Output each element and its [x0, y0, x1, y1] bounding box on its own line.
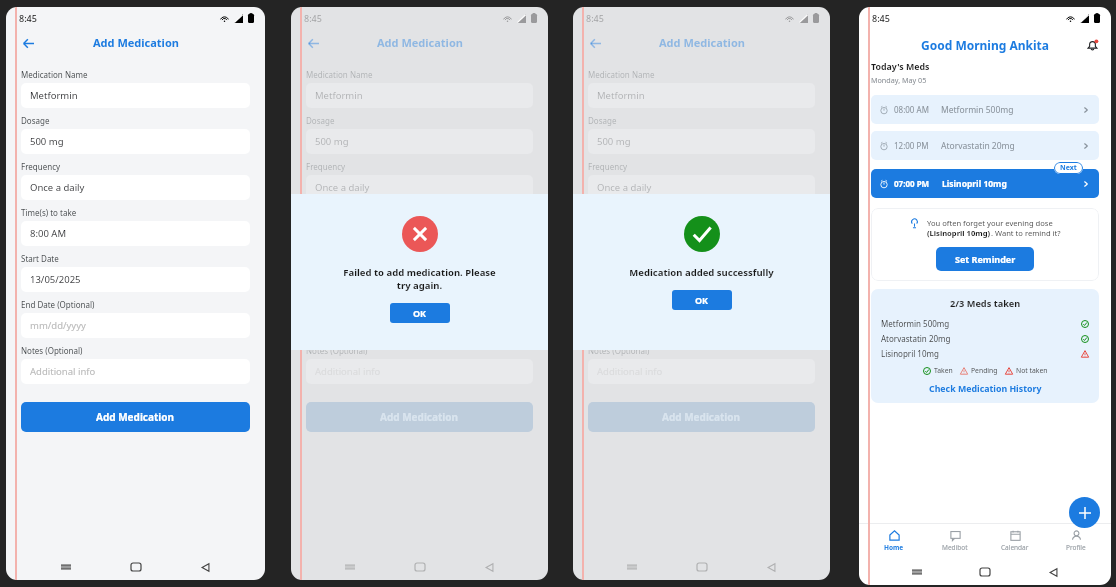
button[interactable]: Recents [340, 557, 360, 577]
staticText: Once a daily [597, 181, 652, 194]
staticText: Additional info [315, 365, 381, 378]
button[interactable]: Home [975, 562, 995, 582]
button[interactable]: Once a daily [588, 175, 815, 200]
staticText: (Lisinopril 10mg) [927, 228, 991, 238]
staticText: Frequency [21, 161, 61, 172]
button[interactable]: 500 mg [306, 129, 533, 154]
staticText: Add Medication [659, 35, 745, 50]
button[interactable]: Add Medication [588, 402, 815, 432]
staticText: Home [884, 543, 904, 552]
staticText: 08:00 AM [894, 104, 929, 115]
staticText: You often forget your evening dose [927, 218, 1053, 228]
staticText: Metformin 500mg [881, 318, 950, 329]
button[interactable]: Medibot [929, 524, 981, 558]
button[interactable]: Back [586, 34, 604, 52]
button[interactable]: Metformin [588, 83, 815, 108]
staticText: 13/05/2025 [315, 273, 366, 286]
button[interactable]: Add medication [1069, 497, 1100, 528]
button[interactable]: mm/dd/yyyy [306, 313, 533, 338]
staticText: Metformin 500mg [941, 104, 1014, 116]
button[interactable]: 08:00 AM [871, 95, 1099, 124]
button[interactable]: Home [692, 557, 712, 577]
button[interactable]: Back [195, 557, 215, 577]
staticText: Medibot [942, 543, 968, 552]
staticText: Once a daily [315, 181, 370, 194]
button[interactable]: 8:00 AM [21, 221, 250, 246]
button[interactable]: 500 mg [588, 129, 815, 154]
button[interactable]: Add Medication [306, 402, 533, 432]
staticText: Start Date [21, 253, 59, 264]
staticText: OK [695, 294, 709, 306]
staticText: 8:45 [19, 12, 37, 24]
staticText: OK [413, 307, 427, 319]
button[interactable]: Metformin [306, 83, 533, 108]
staticText: Once a daily [30, 181, 85, 194]
button[interactable]: Back [304, 34, 322, 52]
button[interactable]: Recents [907, 562, 927, 582]
button[interactable]: Profile [1050, 524, 1102, 558]
staticText: 500 mg [30, 135, 64, 148]
staticText: mm/dd/yyyy [30, 319, 86, 332]
button[interactable]: 07:00 PM [871, 169, 1099, 198]
button[interactable]: Back [479, 557, 499, 577]
button[interactable]: Recents [622, 557, 642, 577]
button[interactable]: OK [672, 290, 732, 310]
staticText: Monday, May 05 [871, 75, 927, 85]
staticText: Medication Name [21, 69, 88, 80]
button[interactable]: 500 mg [21, 129, 250, 154]
staticText: Medication added successfully [593, 266, 810, 279]
button[interactable]: Home [126, 557, 146, 577]
staticText: Metformin [597, 89, 645, 102]
button[interactable]: 12:00 PM [871, 131, 1099, 160]
button[interactable]: Home [868, 524, 920, 558]
button[interactable]: Notifications [1082, 35, 1102, 55]
staticText: Additional info [30, 365, 96, 378]
staticText: 13/05/2025 [597, 273, 648, 286]
button[interactable]: Home [410, 557, 430, 577]
button[interactable]: 13/05/2025 [588, 267, 815, 292]
staticText: 500 mg [315, 135, 349, 148]
staticText: . Want to remind it? [991, 228, 1061, 238]
staticText: Add Medication [662, 410, 741, 424]
button[interactable]: OK [390, 303, 450, 323]
button[interactable]: 8:00 AM [588, 221, 815, 246]
button[interactable]: Back [1043, 562, 1063, 582]
button[interactable]: Back [761, 557, 781, 577]
staticText: 8:45 [872, 12, 890, 24]
button[interactable]: Once a daily [306, 175, 533, 200]
button[interactable]: Add Medication [21, 402, 250, 432]
button[interactable]: Recents [56, 557, 76, 577]
staticText: Frequency [588, 161, 628, 172]
button[interactable]: Check Medication History [929, 383, 1042, 395]
staticText: Dosage [21, 115, 50, 126]
staticText: Notes (Optional) [588, 345, 650, 356]
button[interactable]: Calendar [989, 524, 1041, 558]
staticText: Calendar [1001, 543, 1029, 552]
button[interactable]: 8:00 AM [306, 221, 533, 246]
staticText: Profile [1066, 543, 1086, 552]
staticText: 07:00 PM [894, 178, 930, 189]
button[interactable]: Back [19, 34, 37, 52]
button[interactable]: mm/dd/yyyy [21, 313, 250, 338]
button[interactable]: Once a daily [21, 175, 250, 200]
staticText: Frequency [306, 161, 346, 172]
staticText: Additional info [597, 365, 663, 378]
button[interactable]: Additional info [21, 359, 250, 384]
staticText: 8:45 [586, 12, 604, 24]
button[interactable]: 13/05/2025 [306, 267, 533, 292]
staticText: Metformin [30, 89, 78, 102]
staticText: 2/3 Meds taken [950, 297, 1021, 310]
staticText: Atorvastatin 20mg [881, 333, 951, 344]
staticText: Atorvastatin 20mg [941, 140, 1015, 152]
button[interactable]: 13/05/2025 [21, 267, 250, 292]
button[interactable]: Metformin [21, 83, 250, 108]
button[interactable]: Set Reminder [936, 247, 1034, 271]
